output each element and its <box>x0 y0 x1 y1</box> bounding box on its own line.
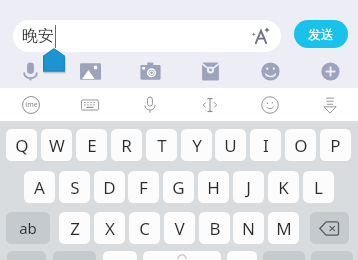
button[interactable]: Camera <box>133 54 167 88</box>
button[interactable]: W <box>41 129 72 161</box>
button[interactable]: Photo <box>73 54 107 88</box>
button[interactable]: Hide keyboard <box>314 88 346 121</box>
button[interactable]: Q <box>6 129 37 161</box>
staticText: E <box>87 134 97 157</box>
button[interactable]: Voice message <box>13 54 47 88</box>
button[interactable]: L <box>303 171 334 203</box>
staticText: V <box>174 217 185 240</box>
button[interactable]: B <box>199 212 230 244</box>
staticText: ime <box>25 100 38 110</box>
staticText: X <box>105 217 115 240</box>
staticText: B <box>209 217 221 240</box>
staticText: 晚安 <box>22 26 54 46</box>
button[interactable]: Emoji <box>263 251 305 260</box>
staticText: T <box>157 134 167 157</box>
staticText: I <box>263 134 269 157</box>
button[interactable]: Space <box>143 251 221 260</box>
staticText: S <box>70 176 80 199</box>
staticText: D <box>103 176 116 199</box>
staticText: J <box>246 176 251 199</box>
button[interactable]: Sticker <box>253 54 287 88</box>
other: Text cursor handle <box>41 46 67 75</box>
button[interactable]: R <box>111 129 142 161</box>
button[interactable]: K <box>268 171 299 203</box>
button[interactable]: M <box>268 212 299 244</box>
button[interactable]: H <box>198 171 229 203</box>
staticText: C <box>139 217 150 240</box>
button[interactable]: Symbols <box>7 251 46 260</box>
button[interactable]: Backspace <box>310 212 349 244</box>
button[interactable]: U <box>215 129 246 161</box>
button[interactable]: Enter <box>311 251 353 260</box>
button[interactable]: G <box>163 171 194 203</box>
button[interactable]: 发送 <box>294 20 348 48</box>
button[interactable]: Y <box>181 129 212 161</box>
staticText: Z <box>70 217 80 240</box>
button[interactable]: Move cursor <box>194 88 226 121</box>
button[interactable]: X <box>94 212 125 244</box>
button[interactable]: Switch language <box>103 251 137 260</box>
button[interactable]: More <box>313 54 347 88</box>
button[interactable]: V <box>164 212 195 244</box>
staticText: N <box>242 217 255 240</box>
staticText: U <box>224 134 237 157</box>
staticText: F <box>139 176 148 199</box>
button[interactable]: T <box>146 129 177 161</box>
button[interactable]: E <box>76 129 107 161</box>
button[interactable]: 晚安 <box>13 20 281 52</box>
button[interactable]: Red packet <box>193 54 227 88</box>
button[interactable]: O <box>285 129 316 161</box>
button[interactable]: Input method <box>15 88 47 121</box>
button[interactable]: I <box>250 129 281 161</box>
button[interactable]: ab <box>6 212 50 244</box>
staticText: O <box>294 134 308 157</box>
button[interactable]: Comma <box>53 251 96 260</box>
staticText: K <box>278 176 289 199</box>
button[interactable]: N <box>233 212 264 244</box>
button[interactable]: Period <box>227 251 257 260</box>
staticText: L <box>314 176 323 199</box>
staticText: Y <box>192 134 202 157</box>
button[interactable]: Voice input <box>134 88 166 121</box>
staticText: A <box>34 176 45 199</box>
staticText: M <box>276 217 292 240</box>
staticText: 发送 <box>308 26 334 42</box>
button[interactable]: A <box>24 171 55 203</box>
button[interactable]: F <box>128 171 159 203</box>
staticText: H <box>207 176 220 199</box>
button[interactable]: P <box>320 129 351 161</box>
staticText: P <box>330 134 341 157</box>
button[interactable]: Emoji <box>254 88 286 121</box>
button[interactable]: Keyboard layout <box>74 88 106 121</box>
staticText: G <box>172 176 185 199</box>
button[interactable]: D <box>94 171 125 203</box>
button[interactable]: C <box>129 212 160 244</box>
other: AI writing assistant <box>251 26 271 46</box>
staticText: ab <box>19 218 37 238</box>
button[interactable]: S <box>59 171 90 203</box>
staticText: Q <box>15 134 29 157</box>
staticText: R <box>121 134 132 157</box>
button[interactable]: J <box>233 171 264 203</box>
staticText: W <box>49 134 65 157</box>
button[interactable]: Z <box>59 212 90 244</box>
